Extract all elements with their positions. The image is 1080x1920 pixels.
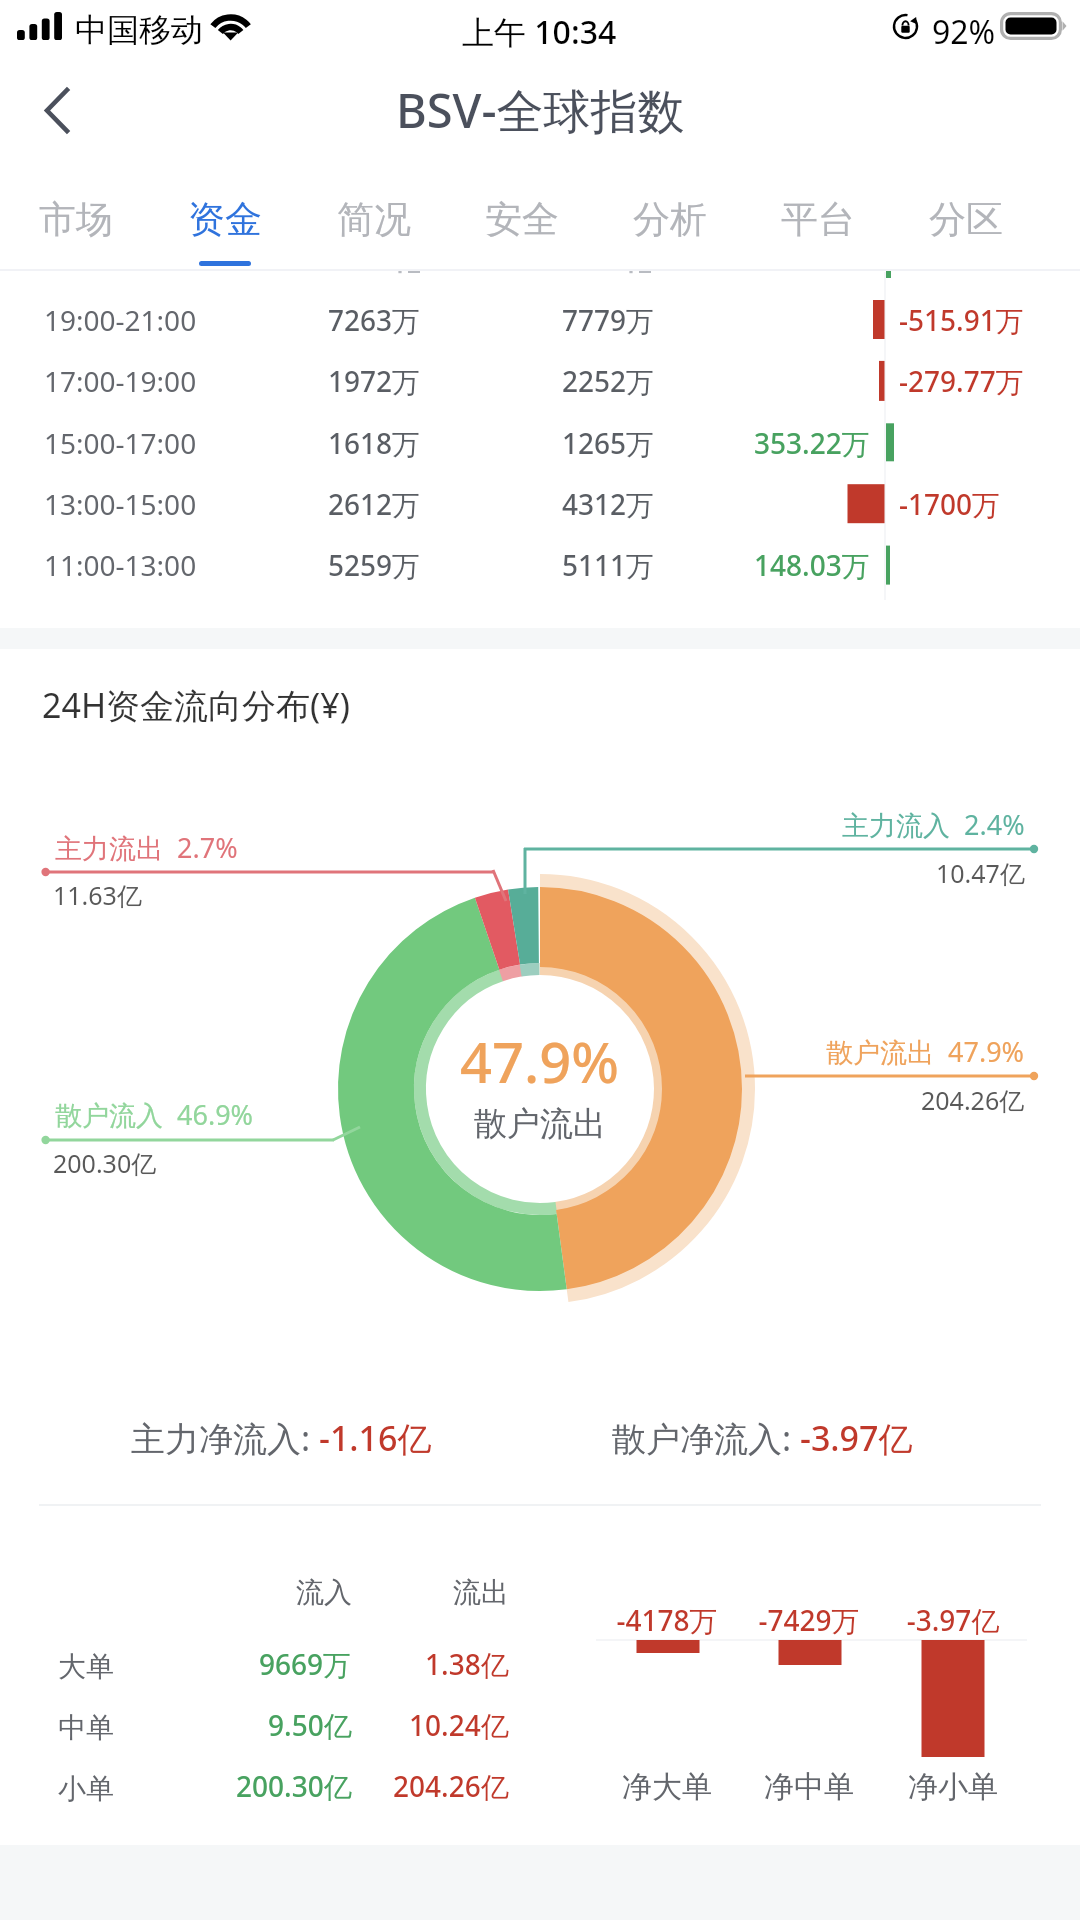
staticText: 10.24亿 [409,1706,509,1744]
button[interactable]: 19:00-21:00 [0,289,1080,350]
staticText: 15:00-17:00 [44,424,197,462]
staticText: 安全 [485,196,559,243]
button[interactable]: 简况 [299,170,448,270]
staticText: 分区 [929,196,1003,243]
staticText: 5111万 [562,546,655,584]
staticText: -1700万 [899,485,1001,523]
staticText: 2612万 [328,485,421,523]
button[interactable]: 15:00-17:00 [0,412,1080,473]
button[interactable]: 小单 [39,1758,529,1819]
staticText: 净中单 [699,1768,919,1806]
button[interactable]: 分区 [892,170,1040,270]
button[interactable]: 分析 [596,170,744,270]
staticText: 148.03万 [754,546,870,584]
button[interactable]: 资金 [150,170,299,270]
button[interactable]: 13:00-15:00 [0,473,1080,534]
staticText: 主力净流入: [131,1415,319,1461]
staticText: 5259万 [328,546,421,584]
button[interactable]: Back [0,62,118,158]
staticText: 47.9% [460,1023,620,1099]
staticText: 流入 [296,1575,352,1610]
staticText: -279.77万 [899,362,1024,400]
staticText: 200.30亿 [236,1767,352,1805]
button[interactable]: 安全 [448,170,596,270]
staticText: 11.63亿 [53,878,142,912]
staticText: 小单 [58,1771,114,1806]
staticText: 1.38亿 [425,1645,509,1683]
staticText: 市场 [39,196,113,243]
staticText: 中国移动 [75,10,203,50]
staticText: 204.26亿 [393,1767,509,1805]
staticText: 流出 [453,1575,509,1610]
staticText: 散户流入 46.9% [55,1096,254,1133]
staticText: 9.50亿 [268,1706,352,1744]
staticText: 散户流出 [474,1103,606,1145]
staticText: 11:00-13:00 [44,546,197,584]
staticText: -1.16亿 [319,1415,432,1461]
staticText: 净小单 [843,1768,1063,1806]
staticText: -7429万 [699,1601,919,1639]
button[interactable]: 大单 [39,1636,529,1697]
staticText: 1972万 [328,362,421,400]
staticText: 92% [932,10,996,54]
button[interactable]: 17:00-19:00 [0,350,1080,411]
staticText: 散户流出 47.9% [826,1033,1025,1070]
staticText: 资金 [188,196,262,243]
button[interactable]: 11:00-13:00 [0,534,1080,595]
staticText: 7263万 [328,301,421,339]
staticText: 353.22万 [754,424,870,462]
staticText: -4178万 [557,1601,777,1639]
staticText: BSV-全球指数 [396,78,685,142]
staticText: 平台 [781,196,855,243]
staticText: 主力流入 2.4% [842,806,1025,843]
staticText: 13:00-15:00 [44,485,197,523]
staticText: 大单 [58,1649,114,1684]
staticText: 4312万 [562,485,655,523]
staticText: 17:00-19:00 [44,362,197,400]
staticText: -3.97亿 [800,1415,913,1461]
button[interactable]: 中单 [39,1697,529,1758]
staticText: -3.97亿 [843,1601,1063,1639]
staticText: -515.91万 [899,301,1024,339]
staticText: 200.30亿 [53,1146,157,1180]
staticText: 1265万 [562,424,655,462]
staticText: 分析 [633,196,707,243]
staticText: 1618万 [328,424,421,462]
staticText: 散户净流入: [612,1415,800,1461]
staticText: 净大单 [557,1768,777,1806]
staticText: 24H资金流向分布(¥) [42,682,350,728]
staticText: 19:00-21:00 [44,301,197,339]
button[interactable]: 平台 [744,170,892,270]
staticText: 9669万 [259,1645,352,1683]
staticText: 2252万 [562,362,655,400]
staticText: 简况 [337,196,411,243]
staticText: 10.47亿 [936,856,1025,890]
staticText: 204.26亿 [921,1083,1025,1117]
staticText: 中单 [58,1710,114,1745]
staticText: 主力流出 2.7% [55,829,238,866]
staticText: 7779万 [562,301,655,339]
button[interactable]: 市场 [1,170,150,270]
staticText: 上午 10:34 [462,10,617,54]
